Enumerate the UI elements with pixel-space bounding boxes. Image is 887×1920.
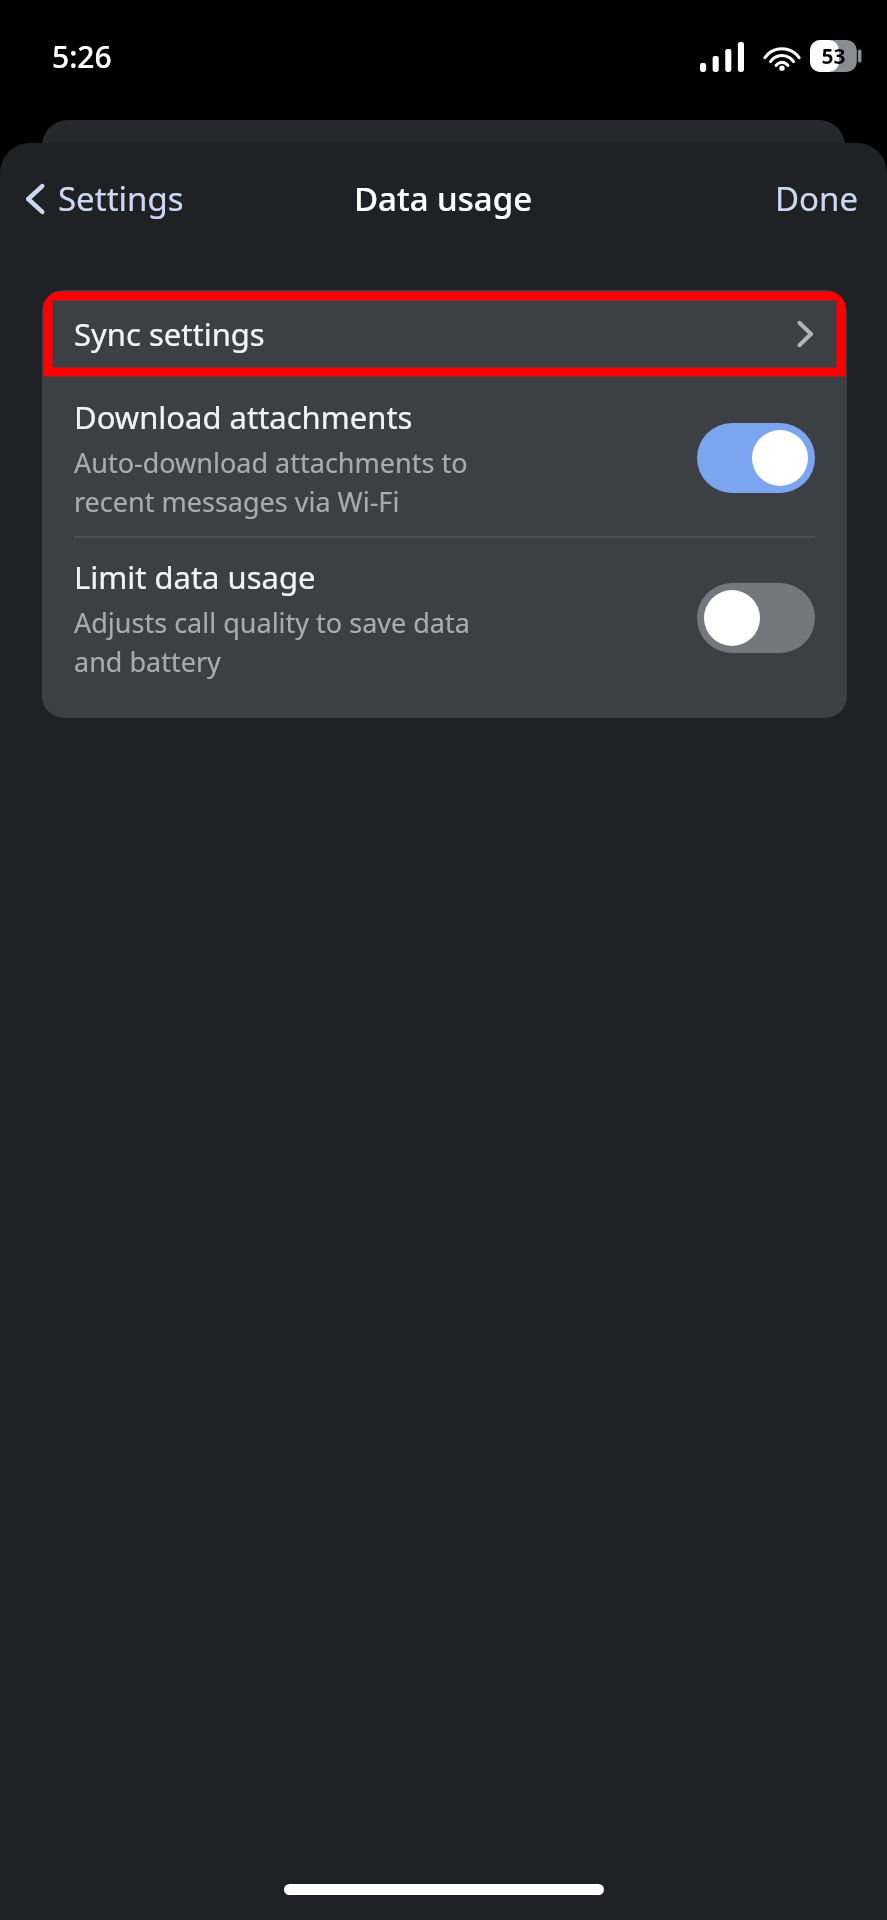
button[interactable]: Done <box>765 168 869 229</box>
staticText: Sync settings <box>74 313 265 355</box>
button[interactable]: Settings <box>12 168 194 229</box>
staticText: Download attachments <box>74 396 413 438</box>
staticText: Auto-download attachments to recent mess… <box>74 444 468 520</box>
staticText: Data usage <box>354 176 533 221</box>
staticText: Settings <box>58 176 184 221</box>
button[interactable]: Download attachments on <box>697 423 815 493</box>
staticText: Limit data usage <box>74 556 316 598</box>
staticText: 53 <box>821 42 846 71</box>
button[interactable]: Download attachments <box>42 378 847 536</box>
button[interactable]: Sync settings <box>42 290 847 378</box>
button[interactable]: Limit data usage off <box>697 583 815 653</box>
staticText: Adjusts call quality to save data and ba… <box>74 604 470 680</box>
staticText: Done <box>775 176 859 221</box>
button[interactable]: Limit data usage <box>42 538 847 696</box>
staticText: 5:26 <box>52 36 112 77</box>
